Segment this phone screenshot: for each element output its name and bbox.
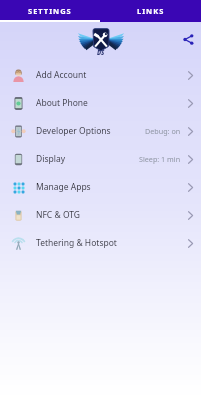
staticText: Sleep: 1 min (139, 154, 181, 164)
button[interactable]: SETTINGS (0, 0, 100, 22)
button[interactable]: Add Account (0, 61, 201, 89)
staticText: Debug: on (145, 126, 181, 136)
staticText: About Phone (36, 97, 88, 109)
button[interactable]: About Phone (0, 89, 201, 117)
button[interactable]: LINKS (100, 0, 201, 22)
button[interactable]: Display (0, 145, 201, 173)
button[interactable]: Share (179, 30, 197, 48)
staticText: Add Account (36, 69, 87, 81)
button[interactable]: NFC & OTG (0, 201, 201, 229)
staticText: SETTINGS (28, 6, 72, 16)
button[interactable]: Tethering & Hotspot (0, 229, 201, 257)
staticText: NFC & OTG (36, 209, 81, 221)
staticText: Developer Options (36, 125, 111, 137)
button[interactable]: Developer Options (0, 117, 201, 145)
staticText: DS (97, 49, 105, 57)
staticText: LINKS (137, 6, 165, 16)
staticText: Manage Apps (36, 181, 91, 193)
button[interactable]: Manage Apps (0, 173, 201, 201)
staticText: Tethering & Hotspot (36, 237, 117, 249)
staticText: Display (36, 153, 65, 165)
